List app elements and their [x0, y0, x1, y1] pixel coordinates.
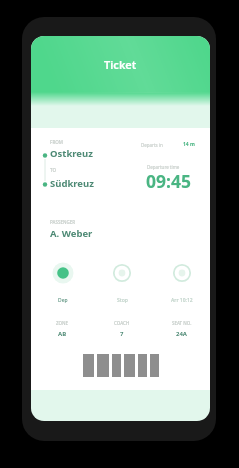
staticText: Südkreuz — [50, 177, 94, 190]
staticText: Departure time — [147, 164, 180, 170]
staticText: Ticket — [104, 57, 137, 72]
staticText: TO — [50, 167, 56, 173]
staticText: Arr 10:12 — [171, 297, 193, 304]
button[interactable]: ZONE — [33, 320, 92, 338]
staticText: A. Weber — [50, 227, 93, 240]
staticText: SEAT NO. — [172, 320, 192, 326]
staticText: PASSENGER — [50, 219, 76, 225]
staticText: Ostkreuz — [50, 147, 93, 160]
button[interactable]: COACH — [92, 320, 152, 338]
button[interactable]: Dep — [33, 261, 92, 304]
button[interactable]: Stop — [92, 261, 152, 304]
staticText: Dep — [58, 297, 68, 304]
button[interactable]: SEAT NO. — [152, 320, 210, 338]
button[interactable]: Ticket — [31, 36, 210, 93]
staticText: COACH — [114, 320, 130, 326]
staticText: FROM — [50, 139, 63, 145]
staticText: 24A — [176, 330, 188, 338]
staticText: 14 m — [183, 141, 195, 148]
staticText: 09:45 — [146, 169, 191, 193]
button[interactable]: Arr 10:12 — [152, 261, 210, 304]
staticText: AB — [58, 330, 67, 338]
staticText: ZONE — [56, 320, 69, 326]
staticText: Stop — [117, 297, 128, 304]
staticText: 7 — [120, 330, 124, 338]
staticText: Departs in — [141, 142, 163, 148]
